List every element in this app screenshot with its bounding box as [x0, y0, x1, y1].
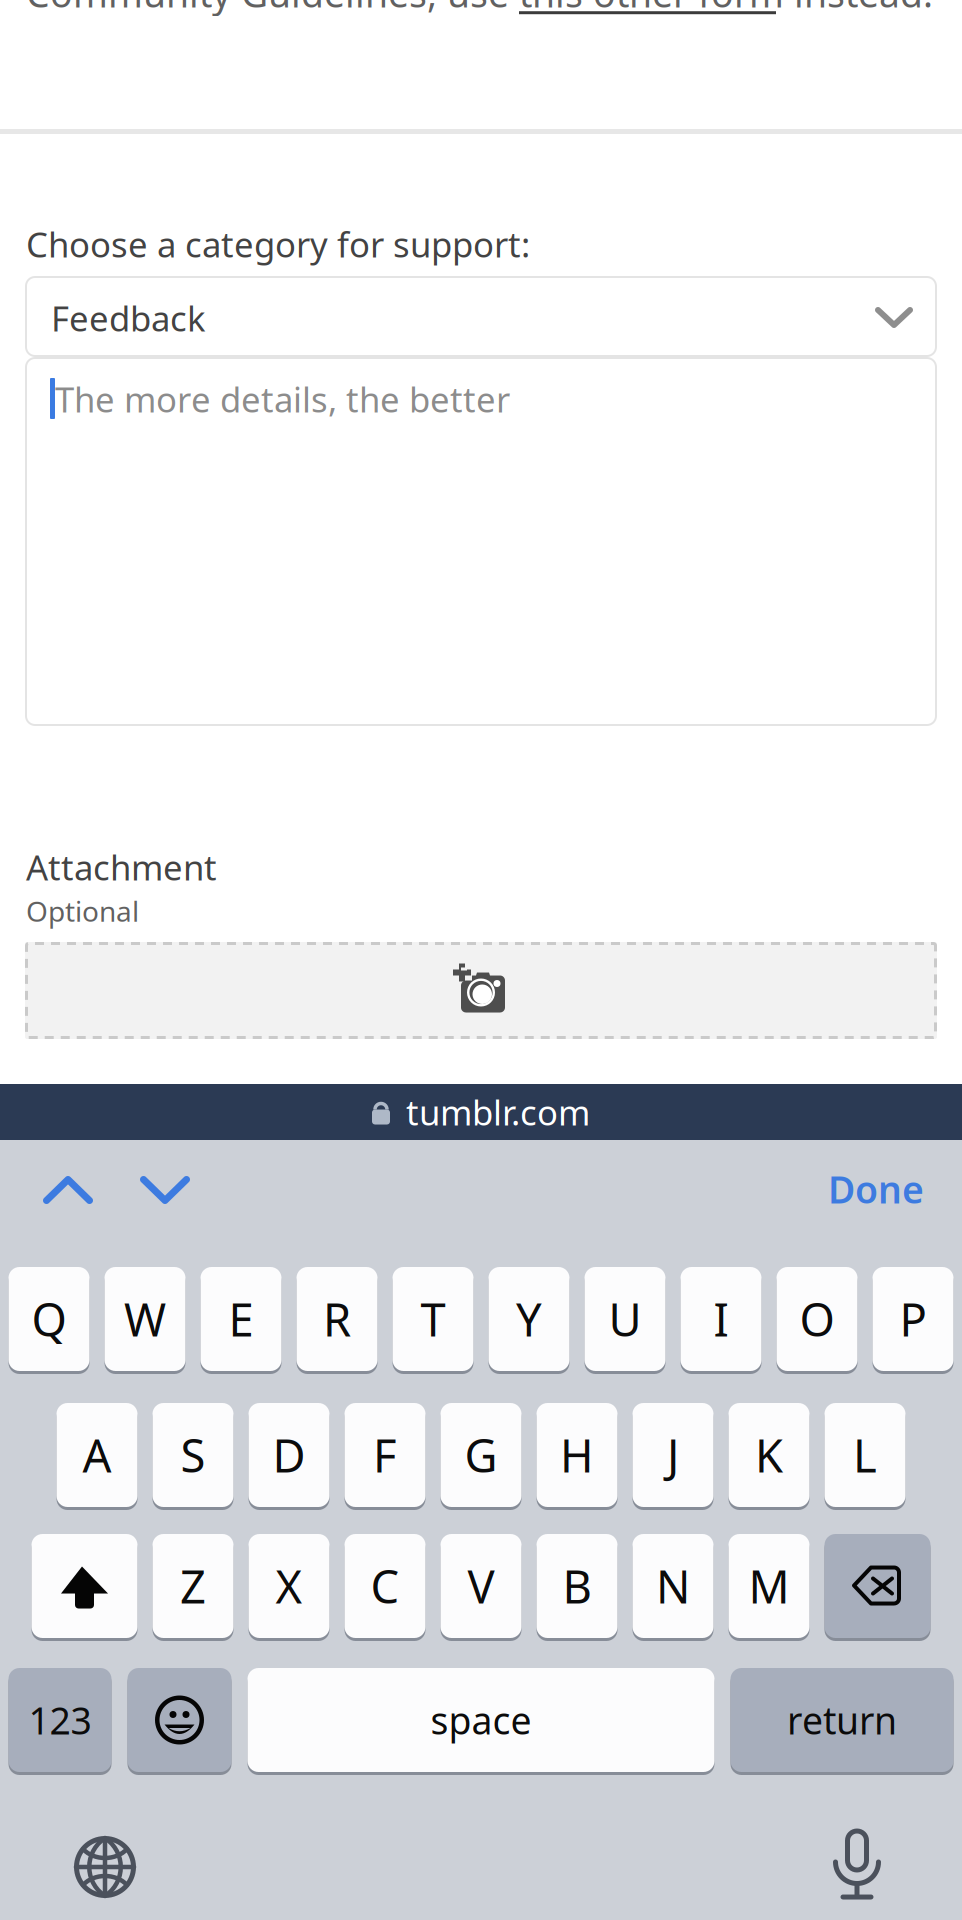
- staticText: T: [420, 1289, 445, 1349]
- button[interactable]: [31, 1534, 137, 1638]
- staticText: A: [82, 1425, 111, 1485]
- staticText: G: [464, 1425, 497, 1485]
- staticText: Attachment: [26, 844, 217, 890]
- button[interactable]: K: [728, 1403, 809, 1507]
- button[interactable]: Done: [814, 1155, 938, 1223]
- button[interactable]: P: [872, 1267, 953, 1371]
- staticText: K: [755, 1425, 783, 1485]
- staticText: Optional: [26, 892, 139, 930]
- staticText: Done: [828, 1164, 924, 1214]
- staticText: C: [370, 1556, 399, 1616]
- button[interactable]: Previous field: [20, 1158, 116, 1222]
- button[interactable]: space: [247, 1668, 714, 1772]
- button[interactable]: B: [536, 1534, 617, 1638]
- button[interactable]: 123: [8, 1668, 111, 1772]
- button[interactable]: M: [728, 1534, 809, 1638]
- button[interactable]: Feedback: [25, 276, 937, 357]
- staticText: tumblr.com: [406, 1089, 590, 1135]
- staticText: Z: [180, 1556, 206, 1616]
- button[interactable]: [127, 1668, 231, 1772]
- staticText: H: [560, 1425, 594, 1485]
- button[interactable]: R: [296, 1267, 377, 1371]
- staticText: space: [430, 1695, 531, 1745]
- staticText: F: [373, 1425, 397, 1485]
- button[interactable]: X: [248, 1534, 329, 1638]
- staticText: 123: [28, 1695, 91, 1745]
- button[interactable]: V: [440, 1534, 521, 1638]
- staticText: B: [562, 1556, 591, 1616]
- staticText: The more details, the better: [55, 376, 510, 422]
- staticText: O: [799, 1289, 834, 1349]
- staticText: Q: [31, 1289, 66, 1349]
- button[interactable]: return: [730, 1668, 953, 1772]
- button[interactable]: E: [200, 1267, 281, 1371]
- button[interactable]: [824, 1534, 930, 1638]
- staticText: Choose a category for support:: [26, 221, 530, 267]
- staticText: Community Guidelines, use this other for…: [26, 0, 933, 18]
- button[interactable]: H: [536, 1403, 617, 1507]
- button[interactable]: O: [776, 1267, 857, 1371]
- staticText: R: [323, 1289, 351, 1349]
- button[interactable]: S: [152, 1403, 233, 1507]
- staticText: Feedback: [51, 295, 206, 341]
- staticText: E: [228, 1289, 253, 1349]
- button[interactable]: Y: [488, 1267, 569, 1371]
- staticText: S: [180, 1425, 205, 1485]
- staticText: Y: [516, 1289, 542, 1349]
- button[interactable]: F: [344, 1403, 425, 1507]
- button[interactable]: U: [584, 1267, 665, 1371]
- staticText: W: [124, 1289, 166, 1349]
- staticText: L: [853, 1425, 877, 1485]
- button[interactable]: Next field: [117, 1158, 213, 1222]
- button[interactable]: W: [104, 1267, 185, 1371]
- staticText: J: [667, 1425, 679, 1485]
- staticText: M: [748, 1556, 789, 1616]
- button[interactable]: L: [824, 1403, 905, 1507]
- staticText: D: [272, 1425, 305, 1485]
- button[interactable]: D: [248, 1403, 329, 1507]
- button[interactable]: Change keyboard: [62, 1824, 148, 1910]
- button[interactable]: N: [632, 1534, 713, 1638]
- button[interactable]: Q: [8, 1267, 89, 1371]
- button[interactable]: C: [344, 1534, 425, 1638]
- staticText: V: [467, 1556, 494, 1616]
- button[interactable]: I: [680, 1267, 761, 1371]
- button[interactable]: T: [392, 1267, 473, 1371]
- button[interactable]: Add attachment: [25, 942, 937, 1039]
- staticText: U: [608, 1289, 641, 1349]
- button[interactable]: J: [632, 1403, 713, 1507]
- staticText: X: [275, 1556, 302, 1616]
- staticText: I: [713, 1289, 728, 1349]
- staticText: P: [899, 1289, 926, 1349]
- button[interactable]: G: [440, 1403, 521, 1507]
- staticText: N: [656, 1556, 690, 1616]
- staticText: return: [787, 1695, 897, 1745]
- button[interactable]: Dictate: [813, 1820, 901, 1908]
- button[interactable]: A: [56, 1403, 137, 1507]
- button[interactable]: Z: [152, 1534, 233, 1638]
